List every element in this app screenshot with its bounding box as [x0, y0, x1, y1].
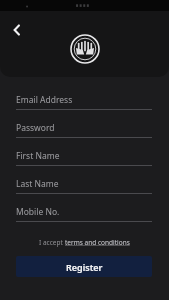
button[interactable]: I accept — [16, 238, 152, 247]
staticText: Email Address — [16, 94, 73, 106]
staticText: I accept — [39, 238, 65, 247]
button[interactable]: First Name — [16, 146, 152, 166]
button[interactable]: Mobile No. — [16, 202, 152, 222]
button[interactable]: Email Address — [16, 90, 152, 110]
button[interactable]: Last Name — [16, 174, 152, 194]
staticText: First Name — [16, 150, 60, 162]
button[interactable]: Register — [16, 256, 152, 277]
staticText: Mobile No. — [16, 206, 60, 218]
button[interactable]: Password — [16, 118, 152, 138]
button[interactable]: Back — [6, 19, 28, 41]
staticText: Register — [66, 261, 103, 273]
staticText: Password — [16, 122, 55, 134]
staticText: terms and conditions — [65, 238, 130, 247]
staticText: Last Name — [16, 178, 59, 190]
